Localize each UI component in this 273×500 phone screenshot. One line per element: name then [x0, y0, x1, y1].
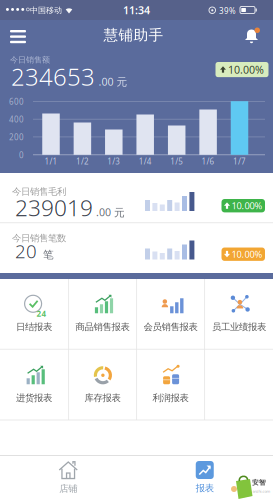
button[interactable]: 今日销售笔数 [0, 223, 273, 273]
staticText: 39% [219, 5, 236, 16]
staticText: .00 元 [98, 74, 127, 89]
staticText: 慧铺助手 [103, 26, 163, 44]
staticText: 1/1 [44, 156, 57, 167]
staticText: 安智 [252, 478, 266, 487]
button[interactable]: 会员销售报表 [138, 280, 204, 346]
staticText: 10.00% [228, 62, 264, 77]
staticText: 商品销售报表 [75, 321, 129, 333]
staticText: 10.00% [231, 248, 262, 260]
staticText: 1/2 [76, 156, 89, 167]
staticText: 239019 [15, 192, 93, 223]
button[interactable]: 店铺 [23, 455, 113, 499]
staticText: 日结报表 [16, 321, 52, 333]
staticText: .00 元 [96, 205, 125, 219]
staticText: 1/7 [233, 156, 246, 167]
staticText: 400 [9, 114, 24, 125]
staticText: 报表 [196, 482, 214, 494]
button[interactable]: 利润报表 [138, 351, 204, 417]
button[interactable]: 库存报表 [69, 351, 135, 417]
staticText: 今日销售毛利 [12, 186, 66, 197]
staticText: 今日销售额 [10, 55, 50, 65]
staticText: 10.00% [231, 199, 262, 212]
button[interactable]: 24 [1, 280, 67, 346]
staticText: 600 [9, 96, 24, 107]
button[interactable]: 菜单 [4, 22, 32, 51]
staticText: 11:34 [123, 3, 150, 17]
staticText: 200 [9, 132, 24, 142]
staticText: 会员销售报表 [144, 321, 198, 333]
staticText: 今日销售笔数 [12, 232, 66, 244]
staticText: 1/4 [139, 156, 152, 167]
button[interactable]: 员工业绩报表 [206, 280, 272, 346]
staticText: 中国移动 [30, 5, 62, 15]
staticText: 1/3 [107, 156, 120, 167]
staticText: 员工业绩报表 [212, 321, 266, 333]
staticText: 笔 [43, 248, 54, 261]
staticText: anzhi.com [252, 488, 270, 494]
staticText: 利润报表 [153, 392, 189, 404]
staticText: 库存报表 [84, 392, 120, 404]
button[interactable]: 报表 [160, 455, 250, 499]
staticText: 24 [37, 308, 47, 319]
staticText: 234653 [11, 60, 95, 92]
staticText: 20 [15, 238, 37, 263]
staticText: 进货报表 [16, 392, 52, 404]
button[interactable]: 商品销售报表 [69, 280, 135, 346]
button[interactable]: 进货报表 [1, 351, 67, 417]
button[interactable]: 消息通知 [243, 27, 261, 45]
staticText: 1/6 [202, 156, 215, 167]
staticText: 店铺 [59, 483, 77, 494]
staticText: 1/5 [170, 156, 183, 167]
button[interactable]: 今日销售毛利 [0, 173, 273, 223]
staticText: 0 [19, 150, 24, 160]
